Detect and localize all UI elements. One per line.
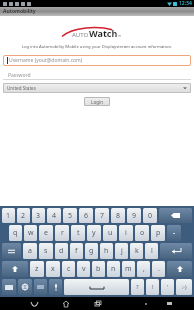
- staticText: t: [77, 228, 80, 238]
- button[interactable]: Menu: [155, 297, 184, 310]
- staticText: v: [82, 264, 86, 274]
- staticText: e: [44, 228, 48, 238]
- button[interactable]: United States: [3, 83, 191, 93]
- button[interactable]: d: [55, 243, 68, 259]
- button[interactable]: u: [103, 225, 117, 241]
- staticText: a: [28, 246, 32, 256]
- staticText: 1: [6, 211, 11, 221]
- staticText: w: [28, 228, 34, 238]
- button[interactable]: [18, 279, 32, 295]
- button[interactable]: 5: [63, 208, 77, 223]
- staticText: 5: [68, 211, 73, 221]
- button[interactable]: 9: [127, 208, 141, 223]
- staticText: q: [13, 228, 18, 238]
- button[interactable]: o: [135, 225, 149, 241]
- button[interactable]: [2, 261, 28, 277]
- staticText: x: [51, 264, 55, 274]
- button[interactable]: t: [71, 225, 85, 241]
- button[interactable]: Password: [3, 70, 191, 80]
- staticText: 0: [148, 211, 153, 221]
- button[interactable]: j: [115, 243, 128, 259]
- button[interactable]: 8: [111, 208, 125, 223]
- staticText: Login: [91, 99, 104, 105]
- button[interactable]: Username (your@domain.com): [3, 55, 191, 66]
- button[interactable]: g: [85, 243, 98, 259]
- button[interactable]: h: [100, 243, 113, 259]
- staticText: y: [92, 228, 96, 238]
- button[interactable]: [34, 279, 47, 295]
- staticText: l: [151, 246, 153, 256]
- button[interactable]: 3: [32, 208, 45, 223]
- button[interactable]: .: [152, 261, 165, 277]
- button[interactable]: l: [145, 243, 158, 259]
- staticText: 12:34: [179, 0, 192, 7]
- button[interactable]: f: [70, 243, 83, 259]
- staticText: n: [111, 264, 116, 274]
- button[interactable]: Recent apps: [82, 297, 114, 310]
- button[interactable]: ?: [131, 279, 144, 295]
- staticText: ?: [136, 283, 139, 291]
- button[interactable]: [160, 243, 192, 259]
- button[interactable]: [159, 208, 192, 223]
- button[interactable]: ,: [137, 261, 150, 277]
- staticText: 9: [132, 211, 137, 221]
- staticText: o: [140, 228, 145, 238]
- button[interactable]: 7: [95, 208, 109, 223]
- button[interactable]: [167, 261, 192, 277]
- button[interactable]: 0: [143, 208, 157, 223]
- staticText: -: [173, 228, 176, 238]
- button[interactable]: x: [46, 261, 60, 277]
- button[interactable]: b: [92, 261, 105, 277]
- staticText: Username (your@domain.com): [9, 57, 83, 64]
- button[interactable]: p: [151, 225, 165, 241]
- staticText: f: [75, 246, 78, 256]
- button[interactable]: Home: [50, 297, 82, 310]
- button[interactable]: ': [161, 279, 174, 295]
- button[interactable]: c: [62, 261, 75, 277]
- button[interactable]: a: [23, 243, 37, 259]
- button[interactable]: n: [107, 261, 120, 277]
- button[interactable]: 6: [79, 208, 93, 223]
- staticText: United States: [7, 85, 36, 91]
- button[interactable]: i: [119, 225, 133, 241]
- button[interactable]: :-): [176, 279, 192, 295]
- staticText: !: [152, 283, 154, 291]
- staticText: k: [135, 246, 139, 256]
- staticText: Password: [8, 72, 31, 79]
- staticText: u: [108, 228, 113, 238]
- button[interactable]: y: [87, 225, 101, 241]
- button[interactable]: w: [24, 225, 37, 241]
- button[interactable]: 2: [17, 208, 30, 223]
- staticText: AUTO: [72, 31, 89, 39]
- button[interactable]: q: [9, 225, 22, 241]
- button[interactable]: [64, 279, 129, 295]
- button[interactable]: Hide keyboard: [18, 297, 50, 310]
- staticText: 3: [36, 211, 41, 221]
- button[interactable]: !: [146, 279, 159, 295]
- staticText: ,: [143, 264, 145, 274]
- button[interactable]: Login: [84, 97, 110, 106]
- button[interactable]: -: [167, 225, 181, 241]
- button[interactable]: m: [122, 261, 135, 277]
- button[interactable]: k: [130, 243, 143, 259]
- button[interactable]: v: [77, 261, 90, 277]
- staticText: h: [104, 246, 109, 256]
- staticText: ™: [118, 34, 122, 39]
- button[interactable]: [2, 243, 21, 259]
- staticText: p: [156, 228, 161, 238]
- button[interactable]: 4: [47, 208, 61, 223]
- staticText: d: [59, 246, 64, 256]
- button[interactable]: z: [30, 261, 44, 277]
- button[interactable]: [2, 279, 16, 295]
- button[interactable]: s: [39, 243, 53, 259]
- button[interactable]: [49, 279, 62, 295]
- button[interactable]: e: [39, 225, 53, 241]
- staticText: r: [61, 228, 64, 238]
- staticText: ': [167, 283, 169, 291]
- button[interactable]: More: [136, 297, 155, 310]
- button[interactable]: 1: [2, 208, 15, 223]
- button[interactable]: r: [55, 225, 69, 241]
- staticText: Watch: [89, 27, 118, 39]
- staticText: 6: [84, 211, 89, 221]
- staticText: c: [67, 264, 71, 274]
